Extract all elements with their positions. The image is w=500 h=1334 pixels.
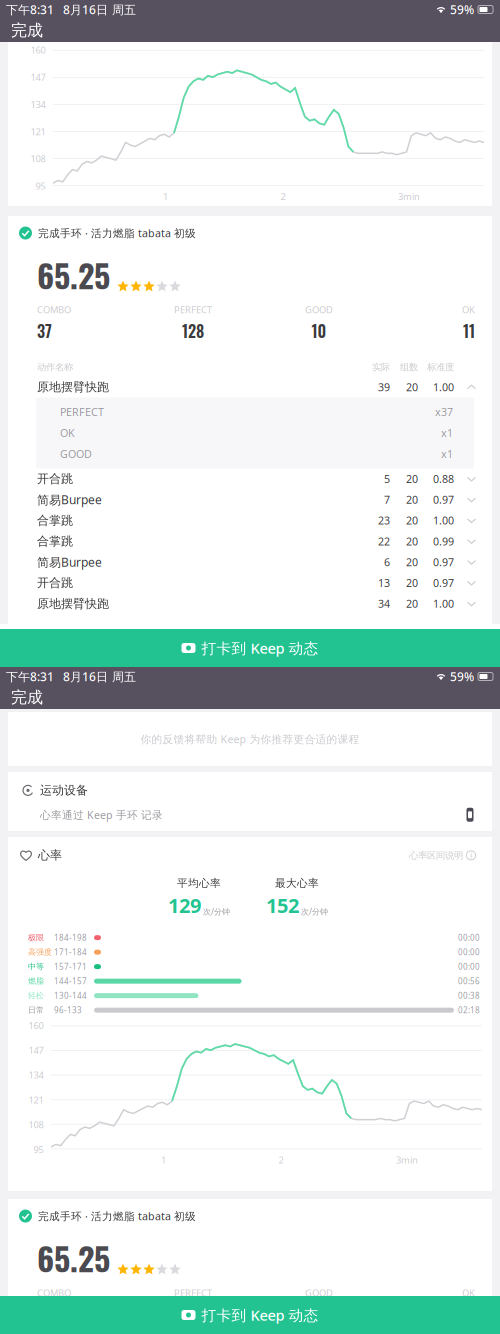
staticText: 6 xyxy=(384,555,390,569)
staticText: 34 xyxy=(378,597,390,611)
button[interactable]: 简易Burpee xyxy=(8,489,492,510)
staticText: 打卡到 Keep 动态 xyxy=(201,638,318,658)
staticText: 次/分钟 xyxy=(301,906,328,917)
staticText: 开合跳 xyxy=(37,471,73,486)
staticText: 心率区间说明 xyxy=(409,850,463,861)
staticText: 65.25 xyxy=(37,251,110,298)
staticText: 5 xyxy=(384,472,390,486)
staticText: 22 xyxy=(378,534,390,548)
staticText: 144-157 xyxy=(54,976,87,986)
button[interactable]: 完成 xyxy=(2,686,52,709)
button[interactable]: 心率通过 Keep 手环 记录 xyxy=(8,798,492,834)
staticText: 20 xyxy=(406,597,418,611)
staticText: 燃脂 xyxy=(28,976,44,986)
staticText: 108 xyxy=(30,153,45,165)
button[interactable]: 开合跳 xyxy=(8,468,492,489)
staticText: 128 xyxy=(182,1302,204,1326)
staticText: 3min xyxy=(396,1154,418,1166)
staticText: 00:00 xyxy=(458,932,480,943)
staticText: 0.88 xyxy=(433,472,454,486)
staticText: 平均心率 xyxy=(177,877,221,890)
staticText: 次/分钟 xyxy=(203,906,230,917)
staticText: 简易Burpee xyxy=(37,492,102,508)
staticText: x1 xyxy=(441,426,453,440)
button[interactable]: 简易Burpee xyxy=(8,552,492,572)
staticText: GOOD xyxy=(305,303,333,316)
staticText: 合掌跳 xyxy=(37,534,73,549)
staticText: 134 xyxy=(30,98,45,111)
staticText: 20 xyxy=(406,493,418,507)
button[interactable]: 打卡到 Keep 动态 xyxy=(0,629,500,667)
staticText: PERFECT xyxy=(174,1287,212,1299)
staticText: 121 xyxy=(30,125,45,138)
staticText: OK xyxy=(462,1287,475,1299)
staticText: i xyxy=(470,850,472,861)
staticText: 3min xyxy=(398,190,420,203)
staticText: 7 xyxy=(384,493,390,507)
staticText: 组数 xyxy=(400,361,418,373)
button[interactable]: 合掌跳 xyxy=(8,531,492,552)
staticText: 1 xyxy=(163,190,168,203)
staticText: PERFECT xyxy=(60,405,104,419)
staticText: 0.99 xyxy=(433,534,454,548)
staticText: 0.97 xyxy=(433,493,454,507)
staticText: 160 xyxy=(28,1019,43,1032)
staticText: 147 xyxy=(30,71,45,83)
staticText: GOOD xyxy=(60,447,92,461)
staticText: 1.00 xyxy=(433,513,454,528)
staticText: COMBO xyxy=(37,303,71,316)
staticText: x37 xyxy=(435,405,453,419)
staticText: 37 xyxy=(37,319,52,343)
staticText: 2 xyxy=(278,1154,283,1166)
staticText: 20 xyxy=(406,555,418,569)
button[interactable]: 完成 xyxy=(2,19,52,42)
staticText: 简易Burpee xyxy=(37,554,102,570)
staticText: OK xyxy=(60,426,75,440)
button[interactable]: 心率区间说明 xyxy=(409,850,476,861)
staticText: 10 xyxy=(311,319,326,343)
staticText: 完成 xyxy=(11,21,43,40)
staticText: 00:00 xyxy=(458,947,480,957)
staticText: 20 xyxy=(406,380,418,394)
staticText: 1.00 xyxy=(433,597,454,611)
staticText: 原地摆臂快跑 xyxy=(37,596,109,611)
staticText: 65.25 xyxy=(37,1234,110,1282)
staticText: 合掌跳 xyxy=(37,513,73,528)
staticText: 开合跳 xyxy=(37,575,73,590)
staticText: 0.97 xyxy=(433,555,454,569)
staticText: 108 xyxy=(28,1118,43,1131)
staticText: 心率 xyxy=(38,848,62,863)
staticText: 160 xyxy=(30,44,45,56)
staticText: 171-184 xyxy=(54,947,87,957)
staticText: 00:56 xyxy=(458,976,480,986)
staticText: 中等 xyxy=(28,962,44,971)
staticText: 日常 xyxy=(28,1005,44,1015)
staticText: 高强度 xyxy=(28,947,52,957)
button[interactable]: 合掌跳 xyxy=(8,510,492,531)
staticText: 20 xyxy=(406,472,418,486)
staticText: 20 xyxy=(406,534,418,548)
button[interactable]: 开合跳 xyxy=(8,572,492,593)
staticText: 完成手环 · 活力燃脂 tabata 初级 xyxy=(38,226,196,240)
staticText: 打卡到 Keep 动态 xyxy=(201,1305,318,1325)
staticText: 11 xyxy=(463,319,475,343)
staticText: 完成手环 · 活力燃脂 tabata 初级 xyxy=(38,1209,196,1223)
staticText: 128 xyxy=(182,319,204,343)
staticText: 10 xyxy=(311,1302,326,1326)
staticText: 原地摆臂快跑 xyxy=(37,380,109,394)
staticText: x1 xyxy=(441,447,453,461)
staticText: 152 xyxy=(266,892,299,918)
staticText: 59% xyxy=(450,668,474,684)
button[interactable]: 原地摆臂快跑 xyxy=(8,593,492,614)
staticText: 20 xyxy=(406,513,418,528)
button[interactable]: 打卡到 Keep 动态 xyxy=(0,1296,500,1334)
staticText: 下午8:31 8月16日 周五 xyxy=(6,1,136,17)
button[interactable]: 原地摆臂快跑 xyxy=(8,377,492,397)
staticText: OK xyxy=(462,303,475,316)
staticText: 心率通过 Keep 手环 记录 xyxy=(40,808,163,822)
staticText: 20 xyxy=(406,576,418,590)
staticText: COMBO xyxy=(37,1287,71,1299)
staticText: 2 xyxy=(280,190,285,203)
